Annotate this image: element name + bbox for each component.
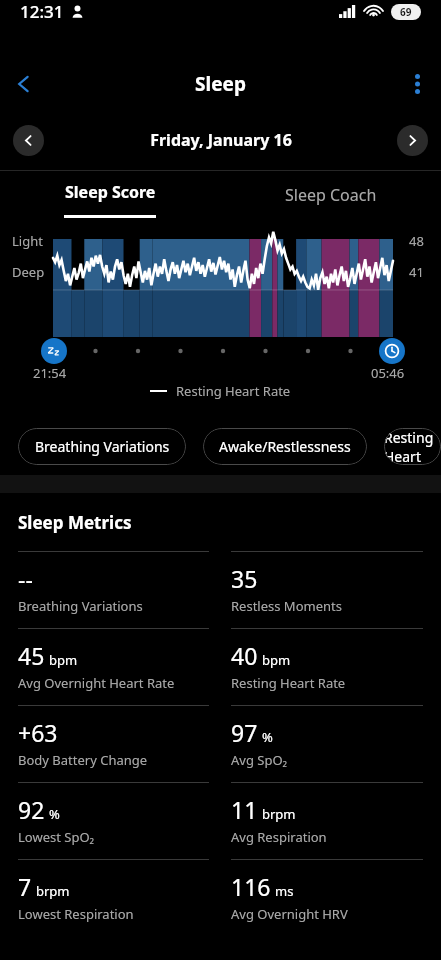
staticText: 41 [409,263,424,281]
staticText: +63 [18,717,58,748]
button[interactable]: Sleep Coach [220,171,441,219]
staticText: Light [12,232,43,250]
staticText: Resting Heart Rate [176,382,291,400]
staticText: % [262,728,273,746]
staticText: 05:46 [371,364,405,382]
button[interactable]: Resting Heart Rate [384,428,441,465]
staticText: Avg SpO₂ [231,751,288,769]
button[interactable]: Sleep Score [0,171,220,219]
staticText: brpm [262,805,296,823]
button[interactable]: More options [393,60,441,108]
staticText: Avg Overnight HRV [231,905,348,923]
staticText: 11 [231,794,258,825]
staticText: bpm [49,651,78,669]
staticText: 40 [231,640,258,671]
staticText: 12:31 [20,0,64,23]
button[interactable]: Wake time [379,338,405,364]
staticText: % [49,805,60,823]
staticText: Body Battery Change [18,751,148,769]
staticText: Awake/Restlessness [219,437,351,456]
staticText: Avg Respiration [231,828,327,846]
staticText: Sleep [195,71,246,97]
button[interactable]: Breathing Variations [18,428,186,465]
staticText: -- [18,563,33,594]
staticText: Avg Overnight Heart Rate [18,674,175,692]
button[interactable]: Back [0,60,48,108]
staticText: bpm [262,651,291,669]
button[interactable]: Sleep start [41,338,67,364]
staticText: Breathing Variations [35,437,170,456]
staticText: Deep [12,263,45,281]
staticText: 97 [231,717,258,748]
staticText: 69 [400,5,412,19]
staticText: Restless Moments [231,597,342,615]
staticText: Lowest SpO₂ [18,828,95,846]
staticText: Sleep Metrics [18,511,132,534]
staticText: Friday, January 16 [150,129,292,151]
staticText: 116 [231,871,271,902]
staticText: Resting Heart Rate [231,674,346,692]
staticText: 21:54 [33,364,67,382]
staticText: 92 [18,794,45,825]
staticText: 7 [18,871,32,902]
staticText: Lowest Respiration [18,905,134,923]
staticText: brpm [36,882,70,900]
staticText: Sleep Score [65,181,156,203]
staticText: Breathing Variations [18,597,143,615]
staticText: 35 [231,563,258,594]
staticText: 48 [409,232,424,250]
staticText: Sleep Coach [285,184,377,206]
button[interactable]: Awake/Restlessness [203,428,367,465]
staticText: 45 [18,640,45,671]
staticText: Resting Heart Rate [384,428,441,465]
button[interactable]: Next day [397,125,428,156]
button[interactable]: Previous day [13,125,44,156]
staticText: ms [275,882,294,900]
